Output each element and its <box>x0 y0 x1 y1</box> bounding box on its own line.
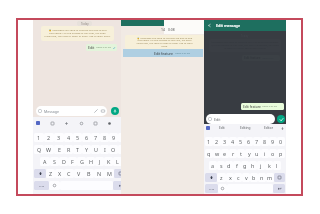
button[interactable]: r <box>229 149 237 158</box>
button[interactable]: P <box>118 145 127 154</box>
button[interactable]: Editing <box>234 124 257 132</box>
button[interactable]: R <box>64 145 73 154</box>
button[interactable]: C <box>64 169 74 178</box>
button[interactable]: v <box>242 173 250 182</box>
button[interactable]: Shift <box>205 173 217 182</box>
button[interactable]: F <box>68 157 77 166</box>
button[interactable]: Z <box>46 169 55 178</box>
button[interactable]: Message <box>36 106 107 116</box>
button[interactable]: y <box>245 149 253 158</box>
button[interactable]: Tool 0 <box>50 121 54 125</box>
button[interactable]: Backspace <box>114 169 127 178</box>
button[interactable]: m <box>266 173 274 182</box>
button[interactable]: G <box>77 157 86 166</box>
button[interactable]: Enter <box>113 181 127 190</box>
button[interactable]: 2 <box>213 137 221 146</box>
button[interactable]: E <box>54 145 64 154</box>
button[interactable]: 6 <box>82 133 91 142</box>
button[interactable]: K <box>104 157 113 166</box>
button[interactable]: Enter <box>273 184 285 193</box>
button[interactable]: Shift <box>34 169 46 178</box>
button[interactable]: d <box>225 161 233 170</box>
button[interactable]: Symbols <box>34 181 49 190</box>
button[interactable]: 9 <box>109 133 118 142</box>
button[interactable]: Symbols <box>205 184 218 193</box>
button[interactable]: Edit <box>210 124 234 132</box>
button[interactable]: Tool 2 <box>79 121 83 125</box>
button[interactable]: M <box>104 169 114 178</box>
button[interactable]: 3 <box>221 137 229 146</box>
button[interactable]: H <box>86 157 95 166</box>
button[interactable]: 5 <box>237 137 245 146</box>
button[interactable]: Tool 3 <box>93 121 97 125</box>
button[interactable]: Edit <box>206 114 275 124</box>
button[interactable]: j <box>257 161 265 170</box>
button[interactable]: Emoji <box>218 184 227 193</box>
button[interactable]: U <box>91 145 100 154</box>
button[interactable]: Emoji <box>49 181 60 190</box>
button[interactable]: e <box>221 149 229 158</box>
button[interactable]: a <box>209 161 217 170</box>
button[interactable]: x <box>226 173 234 182</box>
button[interactable]: Voice message <box>111 107 119 115</box>
button[interactable]: Keyboard menu <box>206 126 210 130</box>
button[interactable]: 5 <box>73 133 82 142</box>
button[interactable]: 3 <box>54 133 64 142</box>
button[interactable]: N <box>94 169 104 178</box>
button[interactable]: Edit <box>86 44 117 51</box>
button[interactable]: p <box>277 149 285 158</box>
button[interactable]: J <box>95 157 104 166</box>
button[interactable]: 0 <box>277 137 285 146</box>
button[interactable]: 🔒 Messages you send to yourself are end-… <box>41 26 114 41</box>
button[interactable]: t <box>237 149 245 158</box>
button[interactable]: l <box>273 161 281 170</box>
button[interactable]: 7 <box>91 133 100 142</box>
button[interactable]: Editor <box>257 124 280 132</box>
button[interactable]: Send <box>277 115 285 123</box>
button[interactable]: X <box>55 169 64 178</box>
button[interactable]: w <box>213 149 221 158</box>
button[interactable]: u <box>253 149 261 158</box>
button[interactable]: B <box>84 169 94 178</box>
button[interactable]: S <box>50 157 59 166</box>
button[interactable]: 2 <box>44 133 54 142</box>
button[interactable]: V <box>74 169 84 178</box>
button[interactable]: k <box>265 161 273 170</box>
button[interactable]: 4 <box>229 137 237 146</box>
button[interactable]: z <box>217 173 226 182</box>
button[interactable]: D <box>59 157 68 166</box>
button[interactable]: 0 <box>118 133 127 142</box>
button[interactable]: q <box>205 149 213 158</box>
button[interactable]: Edit feature <box>241 103 284 110</box>
button[interactable]: Back <box>207 23 212 28</box>
button[interactable]: h <box>249 161 257 170</box>
button[interactable]: f <box>233 161 241 170</box>
button[interactable]: 6 <box>245 137 253 146</box>
button[interactable]: b <box>250 173 258 182</box>
button[interactable]: Tool 4 <box>107 121 111 125</box>
button[interactable]: 8 <box>100 133 109 142</box>
button[interactable]: O <box>109 145 118 154</box>
button[interactable]: Keyboard menu <box>36 121 40 125</box>
button[interactable]: o <box>269 149 277 158</box>
button[interactable]: c <box>234 173 242 182</box>
button[interactable]: T <box>73 145 82 154</box>
button[interactable]: Voice input <box>280 126 284 130</box>
button[interactable]: Tool 1 <box>64 121 68 125</box>
button[interactable]: 4 <box>64 133 73 142</box>
button[interactable]: Q <box>34 145 44 154</box>
button[interactable]: Edit feature <box>123 49 203 57</box>
button[interactable]: i <box>261 149 269 158</box>
button[interactable]: A <box>40 157 50 166</box>
button[interactable]: Backspace <box>274 173 285 182</box>
button[interactable]: g <box>241 161 249 170</box>
button[interactable]: I <box>100 145 109 154</box>
button[interactable]: L <box>113 157 122 166</box>
button[interactable]: 1 <box>205 137 213 146</box>
button[interactable]: 1 <box>34 133 44 142</box>
button[interactable]: n <box>258 173 266 182</box>
button[interactable]: 🔒 Messages you send to yourself are end-… <box>125 35 204 49</box>
